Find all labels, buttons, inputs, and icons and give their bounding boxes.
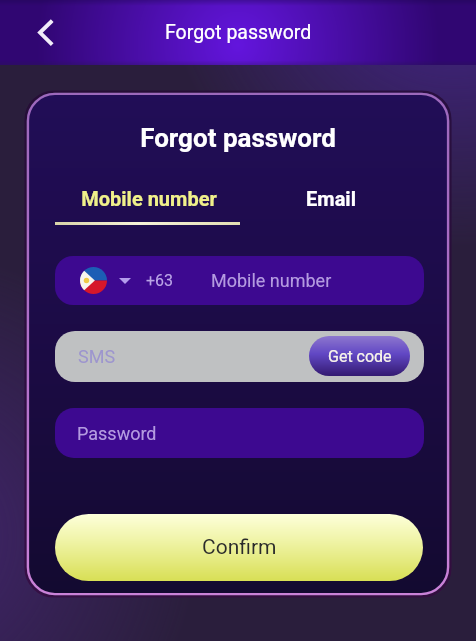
staticText: Password bbox=[77, 423, 157, 444]
button[interactable]: Password bbox=[55, 408, 424, 458]
staticText: Mobile number bbox=[29, 187, 269, 210]
button[interactable]: Back bbox=[24, 12, 64, 52]
button[interactable]: Email bbox=[271, 181, 391, 221]
staticText: +63 bbox=[146, 271, 174, 290]
staticText: Get code bbox=[328, 347, 392, 366]
staticText: Forgot password bbox=[27, 123, 449, 153]
button[interactable]: Mobile number bbox=[27, 181, 267, 229]
staticText: Confirm bbox=[202, 535, 277, 560]
staticText: SMS bbox=[78, 346, 116, 367]
button[interactable]: +63 bbox=[55, 256, 424, 305]
staticText: Forgot password bbox=[165, 21, 312, 44]
staticText: Mobile number bbox=[211, 270, 332, 291]
button[interactable]: SMS bbox=[55, 331, 424, 382]
button[interactable]: Confirm bbox=[55, 514, 423, 581]
staticText: Email bbox=[271, 187, 391, 210]
button[interactable]: Get code bbox=[309, 336, 410, 376]
